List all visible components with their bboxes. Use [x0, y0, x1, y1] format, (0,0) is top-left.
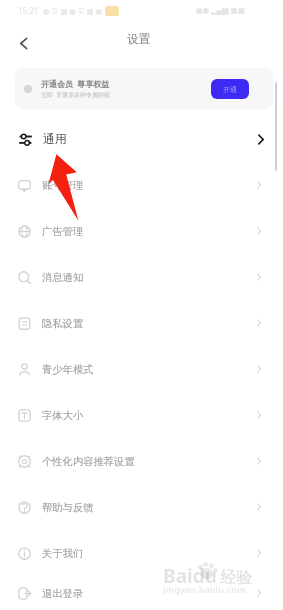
- staticText: 立即 开通享多种专属特权: [41, 91, 111, 99]
- button[interactable]: 账号管理: [0, 162, 283, 208]
- staticText: 帮助与反馈: [42, 501, 94, 514]
- button[interactable]: 开通会员 尊享权益: [15, 68, 273, 109]
- staticText: 设置: [127, 32, 151, 47]
- staticText: 字体大小: [42, 409, 84, 422]
- staticText: 广告管理: [42, 225, 84, 238]
- button[interactable]: 退出登录: [0, 576, 283, 610]
- staticText: 开通: [223, 85, 237, 94]
- staticText: 15:21: [18, 5, 39, 16]
- staticText: 关于我们: [42, 547, 84, 560]
- button[interactable]: 广告管理: [0, 208, 283, 254]
- button[interactable]: 关于我们: [0, 530, 283, 576]
- staticText: 经验: [220, 568, 252, 588]
- button[interactable]: 隐私设置: [0, 300, 283, 346]
- staticText: 通用: [43, 132, 67, 147]
- staticText: 青少年模式: [42, 363, 94, 376]
- button[interactable]: 消息通知: [0, 254, 283, 300]
- button[interactable]: 开通: [211, 79, 249, 99]
- staticText: 账号管理: [42, 179, 84, 192]
- staticText: 隐私设置: [42, 317, 84, 330]
- button[interactable]: 字体大小: [0, 392, 283, 438]
- staticText: ●● ▂▄▆ ■■: [196, 5, 245, 15]
- staticText: 个性化内容推荐设置: [42, 455, 135, 468]
- staticText: 消息通知: [42, 271, 84, 284]
- staticText: 退出登录: [42, 587, 84, 600]
- staticText: Baidu: [163, 563, 218, 589]
- staticText: ● ☰ ■ ● ☰ ■ ●: [43, 6, 102, 16]
- button[interactable]: 通用: [0, 117, 283, 162]
- staticText: jingyan.baidu.com: [163, 583, 246, 595]
- button[interactable]: Back: [12, 32, 34, 54]
- button[interactable]: 帮助与反馈: [0, 484, 283, 530]
- staticText: 开通会员 尊享权益: [41, 78, 110, 89]
- button[interactable]: 青少年模式: [0, 346, 283, 392]
- button[interactable]: 个性化内容推荐设置: [0, 438, 283, 484]
